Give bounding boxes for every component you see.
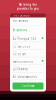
staticText: Mantenimiento — [12, 60, 33, 63]
staticText: Luis Ramírez — [12, 68, 27, 71]
staticText: Técnico — [12, 66, 18, 68]
staticText: 12 Mar 2024 — [12, 45, 30, 48]
staticText: Ver Servicio — [12, 19, 28, 22]
staticText: Sin observaciones — [12, 75, 36, 79]
staticText: Notas — [12, 73, 16, 75]
staticText: Dirección — [12, 35, 19, 37]
staticText: We bring the — [18, 3, 37, 6]
staticText: provider to you — [17, 7, 39, 10]
staticText: Av. Principal 123 — [12, 37, 36, 41]
staticText: Servicio — [12, 58, 18, 60]
button[interactable]: Confirmar — [12, 82, 43, 89]
staticText: Ver Servicio — [14, 14, 30, 17]
staticText: Confirmar — [21, 84, 34, 88]
staticText: Fecha — [12, 43, 17, 45]
staticText: En camino — [12, 28, 27, 32]
staticText: 10:30 am — [12, 52, 25, 56]
staticText: Hora — [12, 51, 16, 52]
